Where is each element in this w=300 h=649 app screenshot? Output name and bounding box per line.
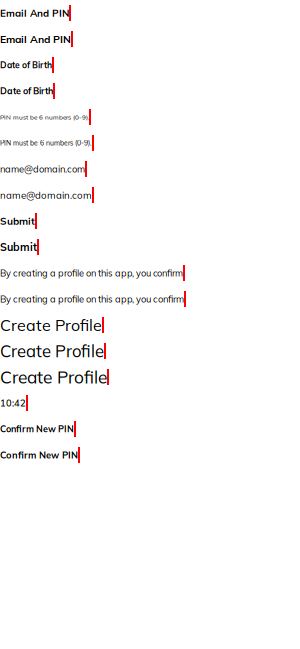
staticText: Date of Birth [0, 60, 52, 70]
staticText: By creating a profile on this app, you c… [0, 267, 183, 279]
staticText: Date of Birth [0, 85, 53, 97]
staticText: Email And PIN [0, 7, 69, 19]
staticText: Create Profile [0, 315, 102, 335]
staticText: 10:42 [0, 397, 26, 409]
staticText: Submit [0, 215, 35, 227]
staticText: Submit [0, 240, 37, 254]
staticText: PIN must be 6 numbers (0-9). [0, 139, 92, 147]
staticText: name@domain.com [0, 189, 92, 201]
staticText: PIN must be 6 numbers (0-9). [0, 113, 89, 121]
staticText: Create Profile [0, 366, 107, 388]
staticText: Email And PIN [0, 32, 71, 46]
staticText: Confirm New PIN [0, 423, 74, 435]
staticText: By creating a profile on this app, you c… [0, 293, 184, 305]
staticText: Create Profile [0, 340, 104, 361]
staticText: name@domain.com [0, 163, 85, 175]
staticText: Confirm New PIN [0, 449, 78, 461]
